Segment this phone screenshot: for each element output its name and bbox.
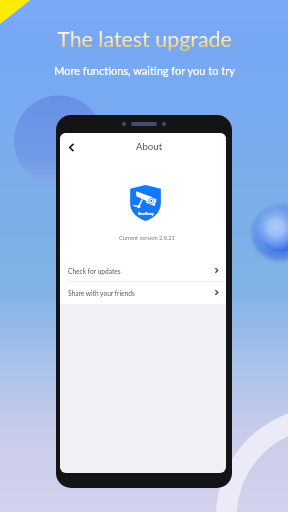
staticText: Current version 2.0.21	[119, 234, 175, 241]
staticText: About	[136, 141, 163, 153]
button[interactable]: Back	[62, 138, 80, 156]
button[interactable]: Share with your friends	[60, 281, 226, 304]
staticText: The latest upgrade	[57, 26, 232, 52]
button[interactable]: Check for updates	[60, 259, 226, 282]
staticText: Check for updates	[68, 267, 121, 275]
staticText: Share with your friends	[68, 289, 135, 297]
staticText: More functions, waiting for you to try	[54, 64, 235, 77]
staticText: SeeEasy	[138, 211, 154, 216]
